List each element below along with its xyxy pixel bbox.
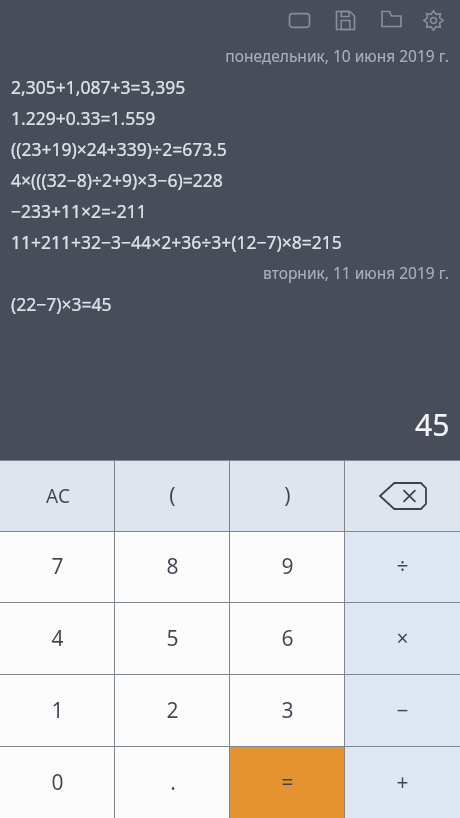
staticText: 7 <box>51 552 64 581</box>
staticText: ÷ <box>396 552 409 581</box>
button[interactable]: 9 <box>230 531 345 602</box>
staticText: 2 <box>166 696 179 725</box>
button[interactable]: − <box>345 674 460 746</box>
staticText: 4 <box>51 624 64 653</box>
staticText: вторник, 11 июня 2019 г. <box>263 262 449 283</box>
staticText: 1.229+0.33=1.559 <box>11 106 156 130</box>
staticText: 4×(((32−8)÷2+9)×3−6)=228 <box>11 168 223 192</box>
staticText: ) <box>284 481 291 510</box>
button[interactable]: 1 <box>0 674 115 746</box>
button[interactable]: 0 <box>0 746 115 818</box>
staticText: ( <box>169 481 176 510</box>
staticText: × <box>396 624 409 653</box>
button[interactable]: ÷ <box>345 531 460 602</box>
button[interactable]: + <box>345 746 460 818</box>
button[interactable]: . <box>115 746 230 818</box>
staticText: ((23+19)×24+339)÷2=673.5 <box>11 137 227 161</box>
staticText: 3 <box>281 696 294 725</box>
staticText: 1 <box>51 696 64 725</box>
staticText: (22−7)×3=45 <box>11 292 112 316</box>
staticText: 45 <box>415 404 450 445</box>
staticText: 0 <box>51 768 64 797</box>
button[interactable]: Open <box>368 0 414 40</box>
staticText: − <box>396 696 409 725</box>
staticText: 11+211+32−3−44×2+36÷3+(12−7)×8=215 <box>11 230 342 254</box>
staticText: . <box>170 768 176 797</box>
button[interactable]: New <box>276 0 322 40</box>
button[interactable]: AC <box>0 460 115 531</box>
button[interactable]: ( <box>115 460 230 531</box>
staticText: 9 <box>281 552 294 581</box>
button[interactable]: = <box>230 746 345 818</box>
button[interactable]: Settings <box>414 0 452 40</box>
button[interactable]: Save <box>322 0 368 40</box>
staticText: 5 <box>166 624 179 653</box>
button[interactable]: 3 <box>230 674 345 746</box>
button[interactable]: ) <box>230 460 345 531</box>
button[interactable]: Backspace <box>345 460 460 531</box>
button[interactable]: 5 <box>115 602 230 674</box>
staticText: −233+11×2=-211 <box>11 199 147 223</box>
button[interactable]: 7 <box>0 531 115 602</box>
staticText: 8 <box>166 552 179 581</box>
staticText: 6 <box>281 624 294 653</box>
button[interactable]: 8 <box>115 531 230 602</box>
button[interactable]: 4 <box>0 602 115 674</box>
button[interactable]: 2 <box>115 674 230 746</box>
staticText: + <box>396 768 409 797</box>
staticText: AC <box>46 483 70 509</box>
staticText: понедельник, 10 июня 2019 г. <box>225 45 449 66</box>
button[interactable]: × <box>345 602 460 674</box>
staticText: = <box>281 768 294 797</box>
staticText: 2,305+1,087+3=3,395 <box>11 75 186 99</box>
button[interactable]: 6 <box>230 602 345 674</box>
